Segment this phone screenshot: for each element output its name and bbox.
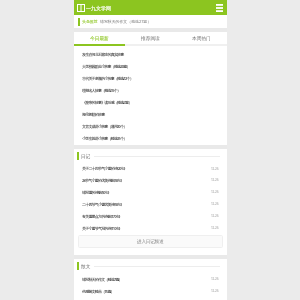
staticText: 有关雪景点方的诗歌(170句) [82, 214, 209, 219]
staticText: 描写雪的诗歌(50句) [82, 190, 209, 195]
button[interactable]: 关于二十四节气小雪的诗(20句) [74, 163, 227, 174]
button[interactable]: 《皇帝的故事》读后感（精选7篇） [74, 96, 227, 108]
button[interactable]: 推荐阅读 [125, 32, 176, 44]
staticText: 今日最新 [90, 35, 109, 41]
staticText: 理想名人故事（精选15个） [82, 88, 121, 93]
staticText: 12-26 [211, 214, 219, 218]
staticText: 进入日记频道 [137, 239, 164, 245]
staticText: 12-26 [211, 202, 219, 206]
button[interactable]: 有关雪景点方的诗歌(170句) [74, 210, 227, 222]
staticText: 描写秋天的作文（精选27篇） [100, 19, 152, 24]
button[interactable]: 本周热门 [176, 32, 227, 44]
staticText: 海伦凯勒的故事 [82, 112, 105, 117]
button[interactable]: 描写雪的诗歌(50句) [74, 186, 227, 198]
staticText: 散文 [81, 263, 91, 269]
button[interactable]: 小学生英语小故事（精选15个） [74, 132, 227, 144]
staticText: 关于小雪节气写的诗(110句) [82, 226, 209, 231]
button[interactable]: 描写秋天的作文（精选7篇） [74, 273, 227, 285]
button[interactable]: 理想名人故事（精选15个） [74, 84, 227, 96]
button[interactable]: Menu [215, 3, 224, 12]
button[interactable]: 文言文成语小故事（通用20个） [74, 120, 227, 132]
staticText: 12-26 [211, 277, 219, 281]
button[interactable]: 24节气小雪的优美诗歌(50句) [74, 174, 227, 186]
button[interactable]: 海伦凯勒的故事 [74, 108, 227, 120]
button[interactable]: 大学校园励志小故事（精选20篇） [74, 60, 227, 72]
staticText: 一九文学网 [86, 5, 111, 11]
staticText: 12-26 [211, 178, 219, 182]
button[interactable]: 今日最新 [74, 32, 125, 44]
staticText: 小学生英语小故事（精选15个） [82, 136, 127, 141]
button[interactable]: 发生在河北石家庄的真实故事 [74, 49, 227, 60]
staticText: 本周热门 [192, 35, 211, 41]
button[interactable]: 伤感散文精品（15篇） [74, 285, 227, 297]
staticText: 头条推荐 [82, 19, 98, 24]
staticText: 12-26 [211, 226, 219, 230]
button[interactable]: 关于小雪节气写的诗(110句) [74, 222, 227, 234]
staticText: 二十四节气小雪优美诗(50句) [82, 202, 209, 207]
button[interactable]: 古代关于孝顺的小故事（精选12个） [74, 72, 227, 84]
staticText: 关于二十四节气小雪的诗(20句) [82, 166, 209, 171]
staticText: 《皇帝的故事》读后感（精选7篇） [82, 100, 132, 105]
staticText: 伤感散文精品（15篇） [82, 289, 209, 294]
staticText: 12-26 [211, 190, 219, 194]
staticText: 描写秋天的作文（精选7篇） [82, 277, 209, 282]
staticText: 12-26 [211, 167, 219, 171]
staticText: 日记 [81, 153, 91, 159]
staticText: 古代关于孝顺的小故事（精选12个） [82, 76, 133, 81]
staticText: 12-26 [211, 289, 219, 293]
staticText: 大学校园励志小故事（精选20篇） [82, 64, 130, 69]
button[interactable]: 进入日记频道 [78, 235, 223, 248]
staticText: 文言文成语小故事（通用20个） [82, 124, 127, 129]
staticText: 24节气小雪的优美诗歌(50句) [82, 178, 209, 183]
button[interactable]: 二十四节气小雪优美诗(50句) [74, 198, 227, 210]
staticText: 推荐阅读 [141, 35, 160, 41]
staticText: 发生在河北石家庄的真实故事 [82, 52, 124, 57]
